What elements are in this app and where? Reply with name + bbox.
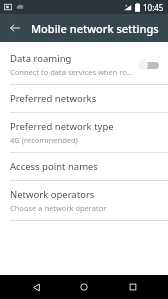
button[interactable]: Home [71, 275, 97, 299]
button[interactable]: Back [23, 275, 49, 299]
button[interactable]: Data roaming toggle [138, 58, 160, 72]
staticText: Connect to data services when roaming [10, 67, 134, 77]
staticText: 10:45 [143, 2, 164, 13]
staticText: Preferred network type [10, 120, 114, 133]
button[interactable]: Preferred network type [0, 113, 168, 152]
staticText: Data roaming [10, 52, 72, 65]
button[interactable]: Back [4, 17, 26, 39]
staticText: 4G (recommended) [10, 135, 78, 145]
button[interactable]: Network operators [0, 181, 168, 220]
button[interactable]: Data roaming [0, 45, 168, 84]
staticText: Mobile network settings [31, 21, 159, 36]
staticText: Network operators [10, 188, 95, 201]
button[interactable]: Preferred networks [0, 85, 168, 112]
button[interactable]: Access point names [0, 153, 168, 180]
staticText: Access point names [10, 160, 98, 173]
staticText: Preferred networks [10, 92, 97, 105]
button[interactable]: Recent apps [120, 275, 146, 299]
staticText: Choose a network operator [10, 203, 107, 213]
